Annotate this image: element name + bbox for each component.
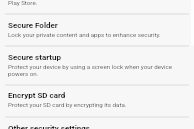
button[interactable]	[0, 86, 194, 116]
staticText: powers on.	[8, 70, 39, 77]
button[interactable]	[0, 47, 194, 84]
staticText: Other security settings	[8, 124, 90, 129]
staticText: Lock your private content and apps to en…	[8, 31, 161, 38]
staticText: Secure Folder	[8, 21, 58, 30]
staticText: Protect your SD card by encrypting its d…	[8, 101, 127, 108]
button[interactable]	[0, 0, 194, 13]
staticText: Protect your device by using a screen lo…	[8, 63, 173, 70]
button[interactable]	[0, 15, 194, 45]
staticText: Play Store.	[8, 0, 38, 6]
button[interactable]	[0, 118, 194, 129]
staticText: Encrypt SD card	[8, 91, 66, 100]
staticText: Secure startup	[8, 53, 61, 62]
